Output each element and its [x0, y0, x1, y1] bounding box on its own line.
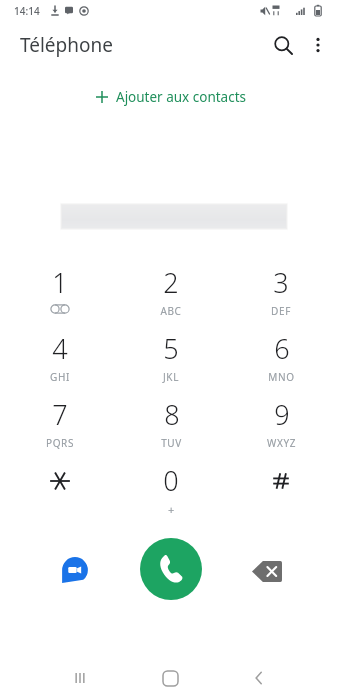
staticText: 2 [163, 264, 179, 301]
staticText: 9 [274, 396, 290, 433]
button[interactable]: Appeler [140, 538, 202, 600]
button[interactable]: Touche 7 [10, 388, 110, 454]
staticText: 6 [274, 330, 290, 367]
staticText: 3 [273, 264, 289, 301]
button[interactable]: Touche 9 [231, 388, 331, 454]
button[interactable]: Touche * [10, 454, 110, 520]
button[interactable]: Touche 5 [121, 322, 221, 388]
button[interactable]: Touche 4 [10, 322, 110, 388]
staticText: PQRS [46, 436, 74, 450]
button[interactable]: Rechercher [265, 27, 301, 63]
button[interactable]: Supprimer [248, 552, 286, 590]
staticText: DEF [271, 304, 291, 318]
staticText: 4 [52, 330, 68, 367]
button[interactable]: Touche 1 [10, 256, 110, 322]
staticText: 1 [52, 264, 68, 301]
staticText: 8 [164, 396, 180, 433]
staticText: WXYZ [267, 436, 296, 450]
button[interactable]: Touche 8 [121, 388, 221, 454]
staticText: Téléphone [20, 32, 113, 58]
button[interactable]: Touche 0 [121, 454, 221, 520]
button[interactable]: Ajouter aux contacts [89, 85, 253, 109]
staticText: 0 [163, 462, 179, 499]
button[interactable]: Applications récentes [64, 662, 96, 694]
staticText: Ajouter aux contacts [116, 88, 247, 106]
button[interactable]: Touche # [231, 454, 331, 520]
button[interactable]: Touche 2 [121, 256, 221, 322]
staticText: + [168, 502, 175, 517]
button[interactable]: Appel vidéo Duo [57, 552, 93, 588]
staticText: ABC [160, 304, 182, 318]
button[interactable]: Retour [243, 662, 275, 694]
button[interactable]: Touche 3 [231, 256, 331, 322]
staticText: 14:14 [14, 4, 40, 18]
staticText: 5 [163, 330, 179, 367]
staticText: TUV [161, 436, 182, 450]
staticText: 7 [52, 396, 68, 433]
button[interactable]: Plus d'options [300, 27, 336, 63]
staticText: GHI [50, 370, 70, 384]
button[interactable]: Accueil [154, 662, 186, 694]
staticText: MNO [268, 370, 295, 384]
button[interactable]: Touche 6 [231, 322, 331, 388]
staticText: JKL [163, 370, 179, 384]
